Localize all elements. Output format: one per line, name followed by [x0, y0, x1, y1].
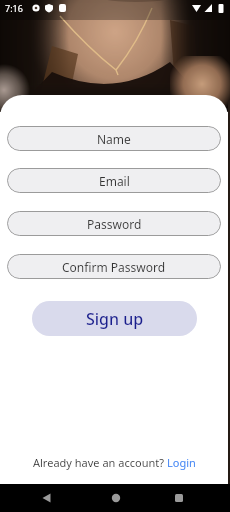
button[interactable]: Sign up — [32, 301, 197, 336]
button[interactable]: Name — [7, 126, 221, 151]
button[interactable]: Email — [7, 168, 221, 193]
button[interactable] — [76, 484, 153, 512]
button[interactable]: Password — [7, 211, 221, 236]
staticText: Sign up — [86, 308, 144, 330]
button[interactable] — [0, 484, 76, 512]
staticText: 7:16 — [5, 2, 23, 14]
staticText: Confirm Password — [62, 259, 166, 275]
staticText: Already have an account? — [33, 455, 167, 470]
button[interactable] — [153, 484, 230, 512]
button[interactable]: Already have an account? — [33, 455, 196, 470]
staticText: Email — [99, 173, 130, 189]
staticText: Name — [97, 131, 131, 147]
button[interactable]: Confirm Password — [7, 254, 221, 279]
staticText: Login — [167, 455, 196, 470]
staticText: Password — [87, 216, 142, 232]
